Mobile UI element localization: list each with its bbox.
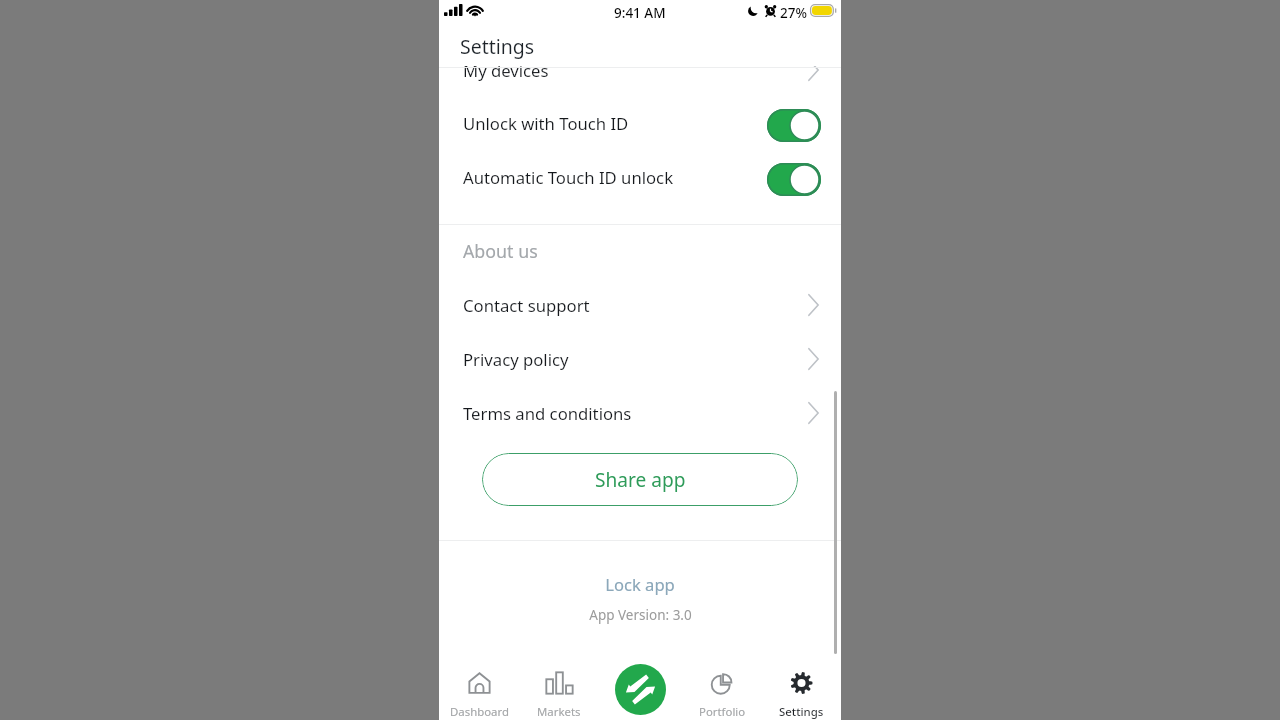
staticText: Unlock with Touch ID: [463, 112, 629, 135]
staticText: Automatic Touch ID unlock: [463, 166, 674, 189]
staticText: Share app: [595, 467, 686, 493]
button[interactable]: Dashboard: [442, 672, 516, 720]
staticText: Portfolio: [699, 704, 746, 720]
staticText: About us: [463, 239, 538, 263]
button[interactable]: Share app: [482, 453, 798, 506]
button[interactable]: Privacy policy: [439, 332, 841, 386]
button[interactable]: Portfolio: [685, 672, 759, 720]
button[interactable]: Trade: [615, 664, 666, 715]
staticText: App Version: 3.0: [589, 606, 692, 624]
staticText: Privacy policy: [463, 348, 569, 371]
staticText: Settings: [460, 33, 535, 60]
button[interactable]: Settings: [764, 672, 838, 720]
staticText: Contact support: [463, 294, 590, 317]
button[interactable]: Terms and conditions: [439, 386, 841, 440]
staticText: Terms and conditions: [463, 402, 632, 425]
button[interactable]: Contact support: [439, 278, 841, 332]
staticText: Settings: [779, 704, 824, 720]
staticText: 9:41 AM: [614, 4, 666, 22]
button[interactable]: Markets: [522, 672, 596, 720]
button[interactable]: Automatic Touch ID unlock: [439, 150, 841, 204]
button[interactable]: Unlock with Touch ID: [439, 96, 841, 150]
staticText: Lock app: [605, 573, 675, 596]
staticText: My devices: [463, 59, 549, 82]
staticText: Markets: [537, 704, 581, 720]
staticText: 27%: [780, 4, 807, 22]
button[interactable]: Lock app: [439, 572, 841, 596]
staticText: Dashboard: [450, 704, 509, 720]
